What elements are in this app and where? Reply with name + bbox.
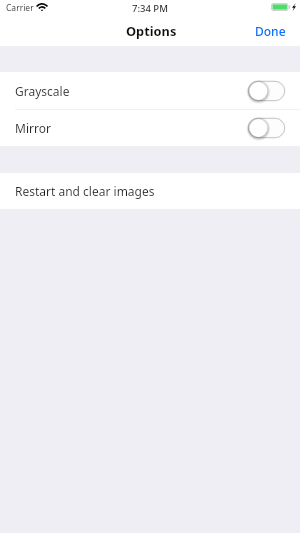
- staticText: Options: [126, 22, 177, 39]
- button[interactable]: Toggle: [248, 81, 285, 101]
- staticText: 7:34 PM: [132, 2, 168, 15]
- staticText: Grayscale: [15, 83, 70, 99]
- staticText: Mirror: [15, 120, 51, 136]
- button[interactable]: Grayscale: [0, 72, 300, 109]
- staticText: Restart and clear images: [15, 183, 155, 199]
- other: Battery: [271, 3, 290, 11]
- staticText: Done: [255, 23, 286, 39]
- button[interactable]: Done: [241, 20, 300, 44]
- staticText: Carrier: [6, 2, 34, 14]
- other: Wi-Fi: [37, 3, 47, 13]
- button[interactable]: Restart and clear images: [0, 173, 300, 209]
- button[interactable]: Toggle: [248, 118, 285, 138]
- button[interactable]: Mirror: [0, 110, 300, 146]
